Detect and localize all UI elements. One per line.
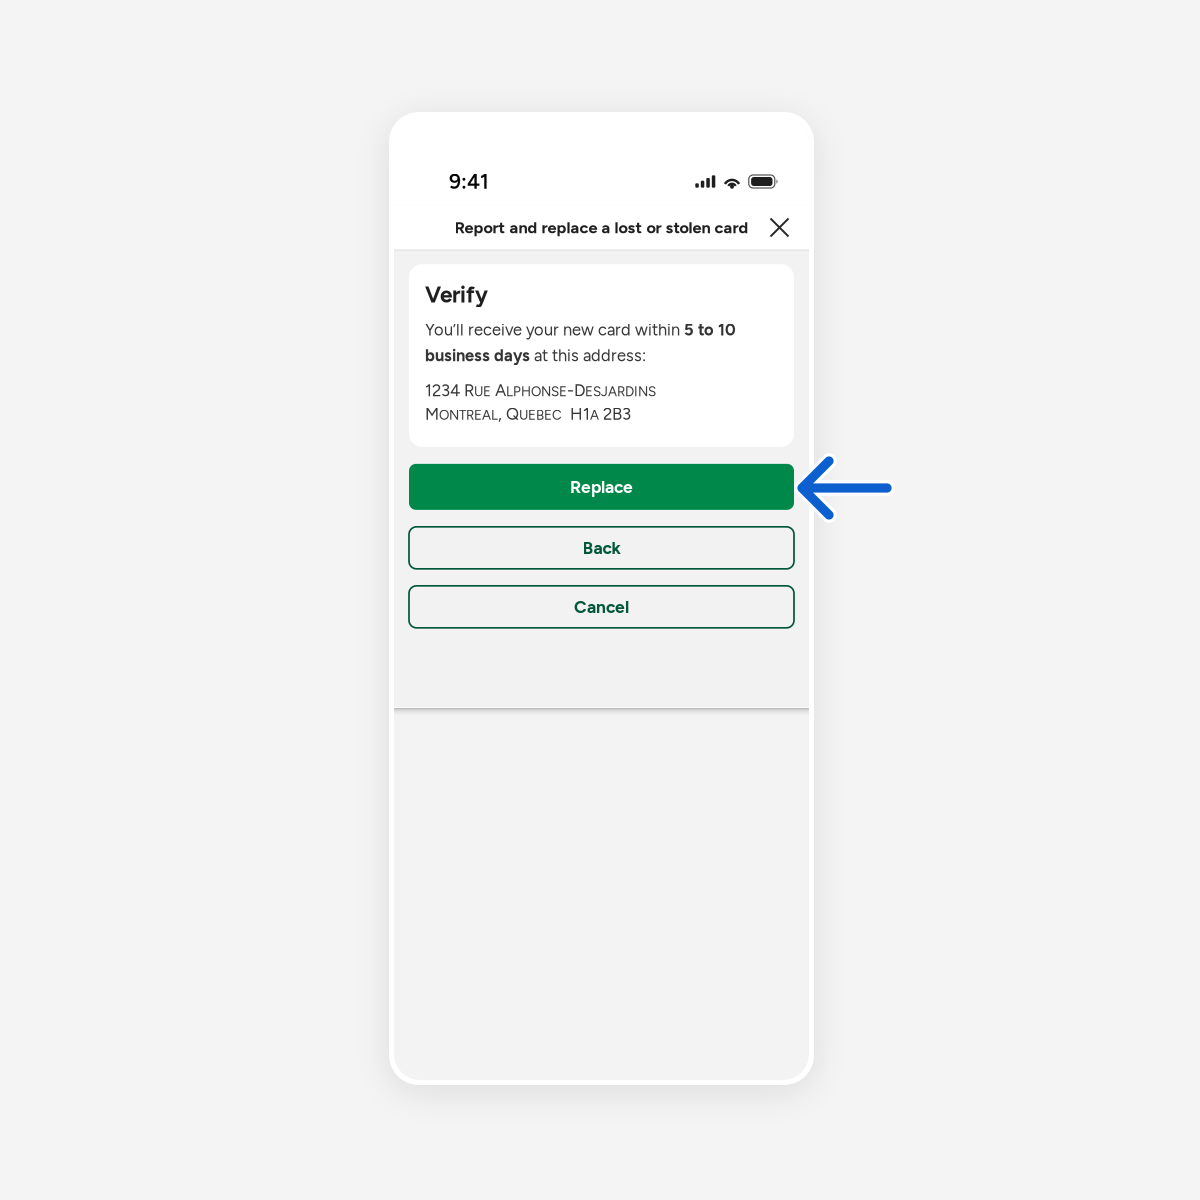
- button[interactable]: Close: [763, 211, 796, 244]
- staticText: Report and replace a lost or stolen card: [454, 218, 748, 237]
- button[interactable]: Cancel: [409, 586, 794, 628]
- staticText: 9:41: [449, 169, 489, 194]
- staticText: Cancel: [574, 596, 629, 617]
- button[interactable]: Back: [409, 527, 794, 569]
- staticText: Verify: [425, 281, 488, 308]
- staticText: Back: [582, 537, 620, 558]
- button[interactable]: Replace: [409, 464, 794, 510]
- staticText: 1234 RUE ALPHONSE-DESJARDINS MONTREAL, Q…: [425, 380, 656, 424]
- staticText: You’ll receive your new card within 5 to…: [425, 320, 736, 365]
- staticText: Replace: [570, 476, 633, 497]
